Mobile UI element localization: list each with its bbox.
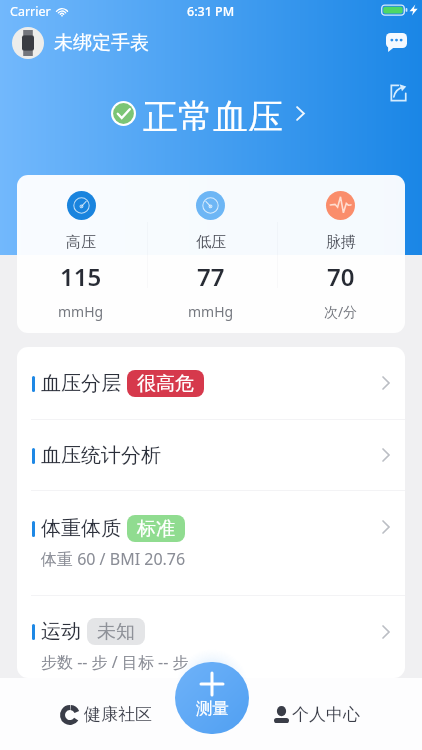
staticText: Carrier	[10, 3, 51, 20]
button[interactable]: 未绑定手表	[12, 27, 149, 59]
staticText: 未知	[97, 620, 135, 644]
button[interactable]: 运动	[17, 596, 405, 678]
staticText: 正常血压	[143, 95, 283, 131]
button[interactable]: 正常血压	[0, 95, 419, 131]
button[interactable]: 脉搏	[276, 175, 405, 333]
staticText: 115	[60, 260, 102, 293]
staticText: 测量	[196, 698, 229, 719]
button[interactable]: Messages	[383, 29, 410, 56]
staticText: 6:31 PM	[187, 3, 235, 20]
staticText: 运动	[41, 619, 81, 644]
staticText: 次/分	[324, 302, 358, 321]
staticText: 70	[327, 260, 355, 293]
staticText: mmHg	[58, 302, 104, 321]
button[interactable]: 体重体质	[17, 491, 405, 595]
button[interactable]: 高压	[17, 175, 145, 333]
staticText: 血压统计分析	[41, 443, 161, 468]
button[interactable]: Share	[385, 80, 410, 105]
staticText: 个人中心	[292, 704, 360, 725]
button[interactable]: 健康社区	[60, 704, 152, 725]
button[interactable]: 低压	[146, 175, 275, 333]
staticText: 标准	[137, 517, 175, 541]
staticText: 血压分层	[41, 371, 121, 396]
staticText: 77	[197, 260, 225, 293]
button[interactable]: 血压统计分析	[17, 420, 405, 490]
button[interactable]: 血压分层	[17, 347, 405, 419]
staticText: 未绑定手表	[54, 31, 149, 55]
staticText: 低压	[196, 233, 226, 252]
staticText: 体重体质	[41, 516, 121, 541]
staticText: 高压	[66, 233, 96, 252]
staticText: 脉搏	[326, 233, 356, 252]
staticText: 步数 -- 步 / 目标 -- 步	[41, 651, 189, 673]
staticText: mmHg	[188, 302, 234, 321]
button[interactable]: 测量	[175, 662, 249, 734]
staticText: 很高危	[137, 372, 194, 396]
staticText: 健康社区	[84, 704, 152, 725]
staticText: 体重 60 / BMI 20.76	[41, 548, 186, 570]
button[interactable]: 个人中心	[274, 704, 360, 725]
